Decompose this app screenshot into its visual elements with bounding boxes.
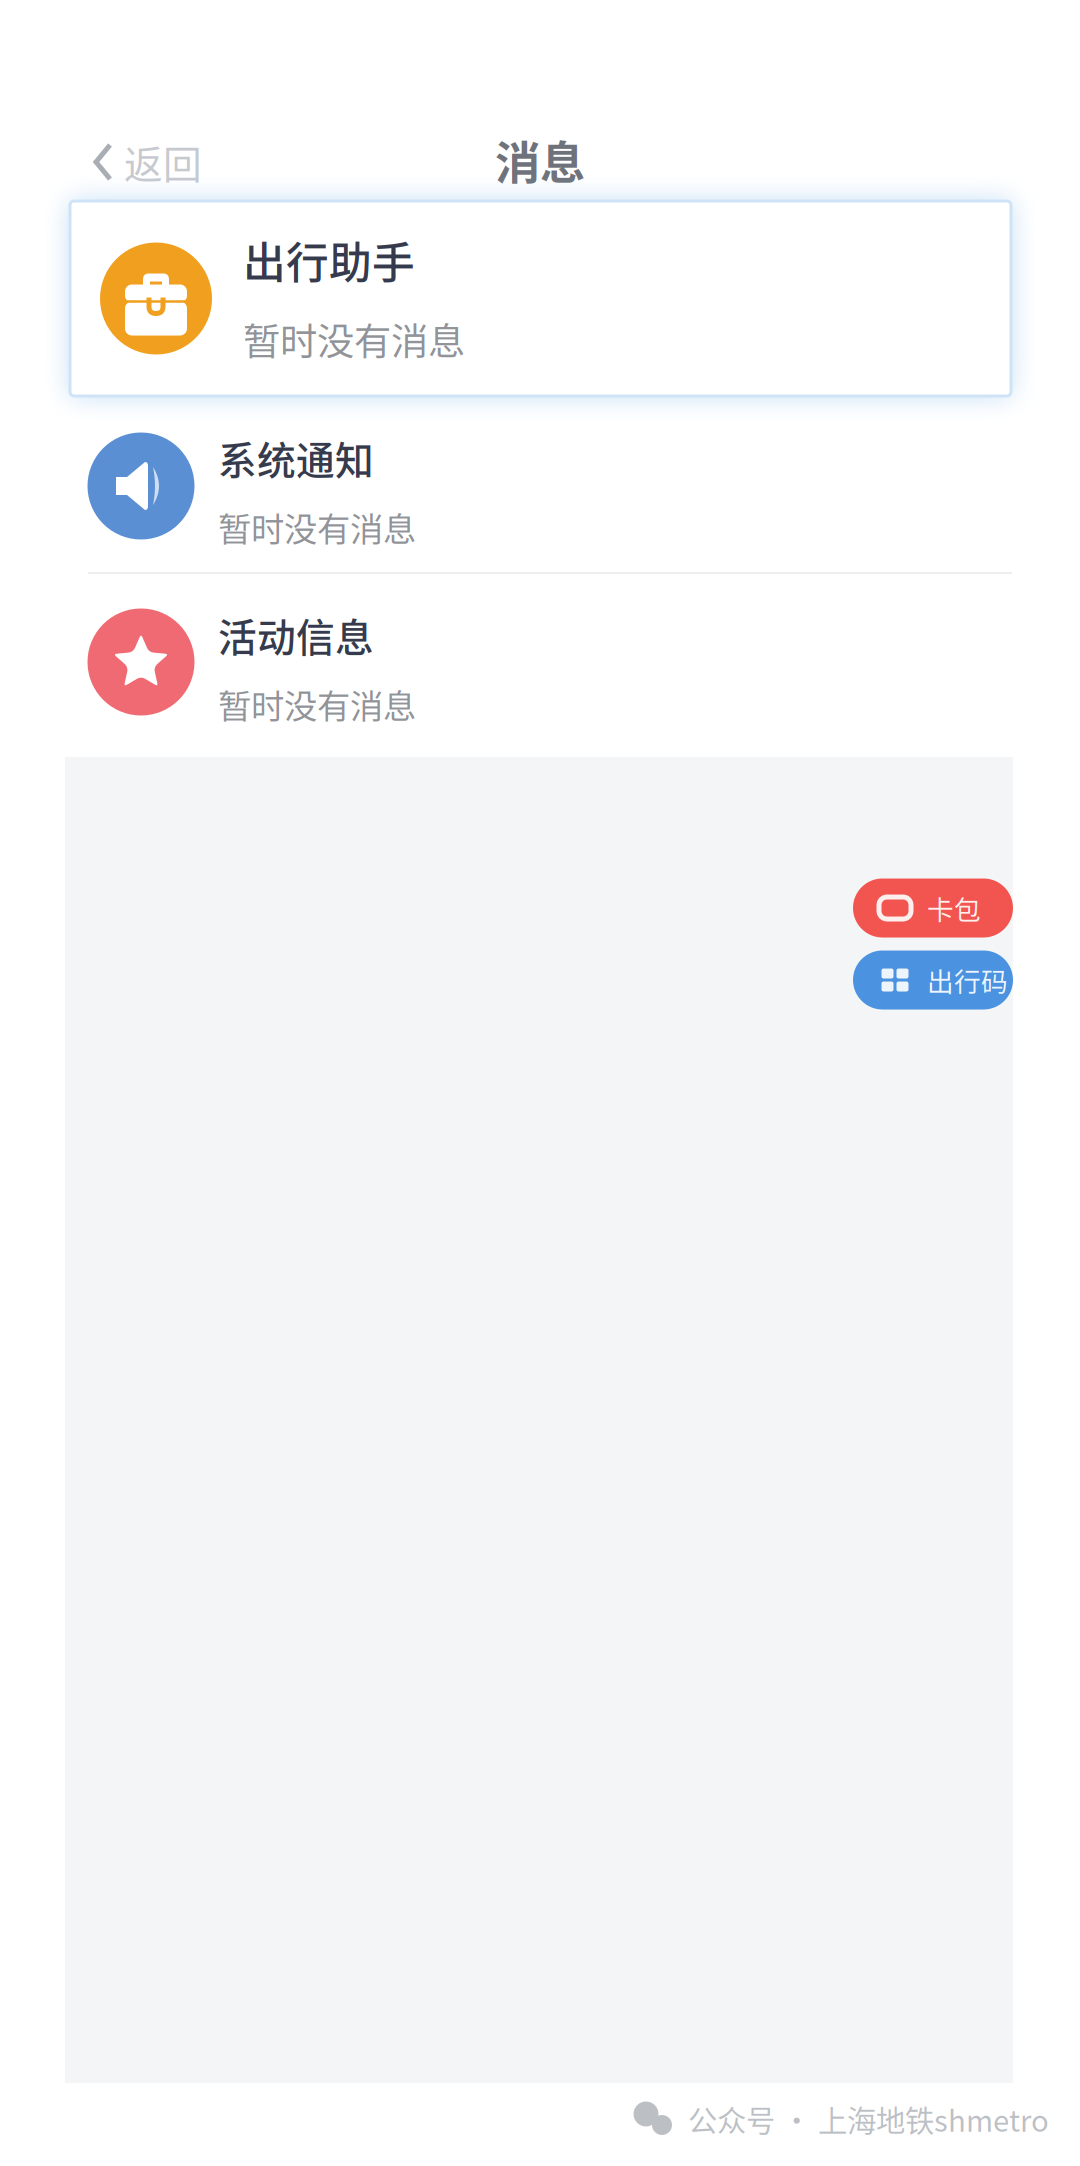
button[interactable]: 活动信息: [65, 574, 1013, 750]
staticText: 暂时没有消息: [218, 680, 416, 728]
button[interactable]: 返回: [0, 123, 330, 201]
staticText: 出行码: [927, 961, 1008, 999]
staticText: 出行助手: [243, 229, 415, 291]
staticText: 公众号 · 上海地铁shmetro: [688, 2098, 1049, 2140]
staticText: 暂时没有消息: [218, 503, 416, 551]
button[interactable]: 出行助手: [72, 203, 1009, 394]
staticText: 活动信息: [218, 607, 374, 663]
staticText: 卡包: [927, 889, 981, 927]
button[interactable]: 系统通知: [65, 400, 1013, 572]
button[interactable]: 卡包: [853, 878, 1013, 937]
staticText: 消息: [495, 127, 585, 193]
staticText: 返回: [124, 134, 202, 190]
button[interactable]: 出行码: [853, 950, 1013, 1009]
staticText: 暂时没有消息: [243, 312, 465, 366]
staticText: 系统通知: [218, 430, 374, 486]
